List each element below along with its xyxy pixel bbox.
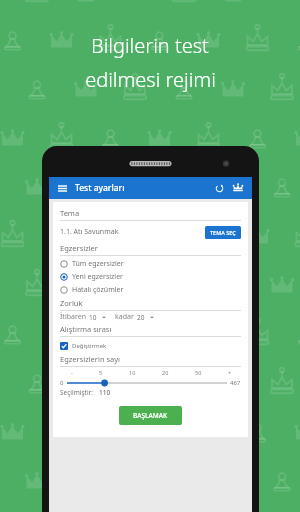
staticText: Seçilmiştir: — [60, 388, 94, 397]
button[interactable]: Tüm egzersizler — [60, 257, 241, 270]
staticText: Zorluk — [60, 298, 83, 308]
button[interactable]: Menu — [55, 181, 69, 195]
staticText: 20 — [162, 369, 169, 376]
button[interactable]: Exercise count slider — [67, 378, 227, 388]
staticText: Test ayarları — [75, 182, 125, 194]
button[interactable]: Refresh — [211, 180, 227, 196]
staticText: İtibaren — [60, 312, 86, 322]
staticText: edilmesi rejimi — [85, 66, 216, 93]
staticText: - — [71, 369, 73, 376]
staticText: Egzersizler — [60, 243, 98, 253]
staticText: 5 — [99, 369, 103, 376]
staticText: BAŞLAMAK — [133, 411, 168, 420]
button[interactable]: İtibaren — [60, 311, 107, 323]
staticText: Bilgilerin test — [91, 32, 209, 59]
staticText: Hatalı çözümler — [72, 285, 124, 295]
button[interactable]: Premium — [229, 179, 247, 197]
staticText: TEMA SEÇ — [210, 229, 236, 236]
staticText: kadar — [115, 312, 134, 322]
staticText: Alıştırma sırası — [60, 324, 112, 334]
staticText: 467 — [230, 379, 241, 387]
staticText: Tüm egzersizler — [72, 259, 124, 269]
staticText: 10 — [129, 369, 136, 376]
button[interactable]: kadar — [115, 311, 155, 323]
staticText: 10 — [89, 313, 97, 322]
staticText: 20 — [137, 313, 145, 322]
staticText: Tema — [60, 208, 80, 218]
staticText: + — [228, 369, 232, 376]
button[interactable]: BAŞLAMAK — [119, 406, 182, 425]
staticText: Egzersizlerin sayı — [60, 354, 121, 364]
button[interactable]: TEMA SEÇ — [205, 226, 241, 239]
button[interactable]: Hatalı çözümler — [60, 283, 241, 296]
button[interactable]: Yeni egzersizler — [60, 270, 241, 283]
staticText: 0 — [60, 379, 64, 387]
staticText: 50 — [195, 369, 202, 376]
staticText: Değiştirmek — [72, 342, 107, 350]
staticText: 1.1. Atı Savunmak — [60, 227, 119, 237]
staticText: 110 — [99, 388, 111, 397]
button[interactable]: Değiştirmek — [60, 340, 107, 352]
staticText: Yeni egzersizler — [72, 272, 123, 282]
